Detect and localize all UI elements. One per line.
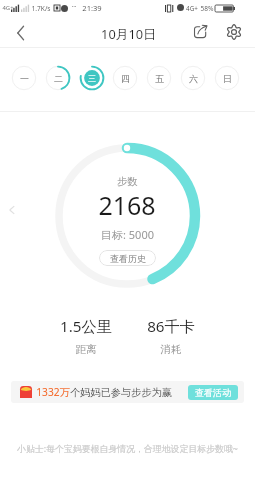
staticText: 日 bbox=[223, 73, 232, 84]
staticText: 四 bbox=[121, 73, 130, 84]
staticText: 21:39 bbox=[82, 3, 102, 13]
staticText: 2168 bbox=[98, 188, 156, 222]
button[interactable]: 六 bbox=[179, 64, 207, 92]
button[interactable]: 1332万 bbox=[11, 381, 244, 403]
staticText: 查看历史 bbox=[110, 253, 146, 264]
staticText: 小贴士:每个宝妈要根自身情况，合理地设定目标步数哦~ bbox=[0, 442, 255, 454]
button[interactable]: 一 bbox=[10, 64, 38, 92]
button[interactable]: 查看历史 bbox=[99, 250, 156, 266]
staticText: 查看活动 bbox=[195, 387, 231, 398]
staticText: 1.7K/s bbox=[31, 4, 51, 13]
button[interactable]: Share bbox=[189, 20, 212, 43]
button[interactable]: 日 bbox=[213, 64, 241, 92]
other: Previous day bbox=[5, 203, 19, 217]
staticText: 10月10日 bbox=[101, 25, 156, 42]
staticText: 4G+ bbox=[2, 4, 14, 12]
staticText: 1.5公里 bbox=[60, 316, 112, 337]
button[interactable]: Settings bbox=[222, 20, 245, 43]
staticText: 目标: 5000 bbox=[101, 227, 154, 242]
staticText: 个妈妈已参与步步为赢 bbox=[70, 386, 172, 399]
button[interactable]: 二 bbox=[44, 64, 72, 92]
button[interactable]: 四 bbox=[111, 64, 139, 92]
staticText: 58% bbox=[200, 4, 214, 13]
button[interactable]: 查看活动 bbox=[188, 385, 238, 400]
staticText: 4G+ bbox=[186, 4, 198, 13]
staticText: 1332万 bbox=[36, 385, 70, 399]
staticText: 一 bbox=[20, 73, 29, 84]
staticText: 二 bbox=[54, 73, 63, 84]
staticText: ··· bbox=[71, 2, 77, 11]
staticText: 消耗 bbox=[160, 343, 182, 356]
button[interactable]: 三 bbox=[78, 64, 106, 92]
staticText: 六 bbox=[189, 73, 198, 84]
staticText: 86千卡 bbox=[147, 316, 195, 337]
staticText: 三 bbox=[88, 73, 96, 83]
staticText: 步数 bbox=[117, 175, 138, 188]
button[interactable]: Back bbox=[9, 21, 32, 44]
staticText: 距离 bbox=[75, 343, 97, 356]
staticText: 五 bbox=[155, 73, 164, 84]
button[interactable]: 五 bbox=[145, 64, 173, 92]
